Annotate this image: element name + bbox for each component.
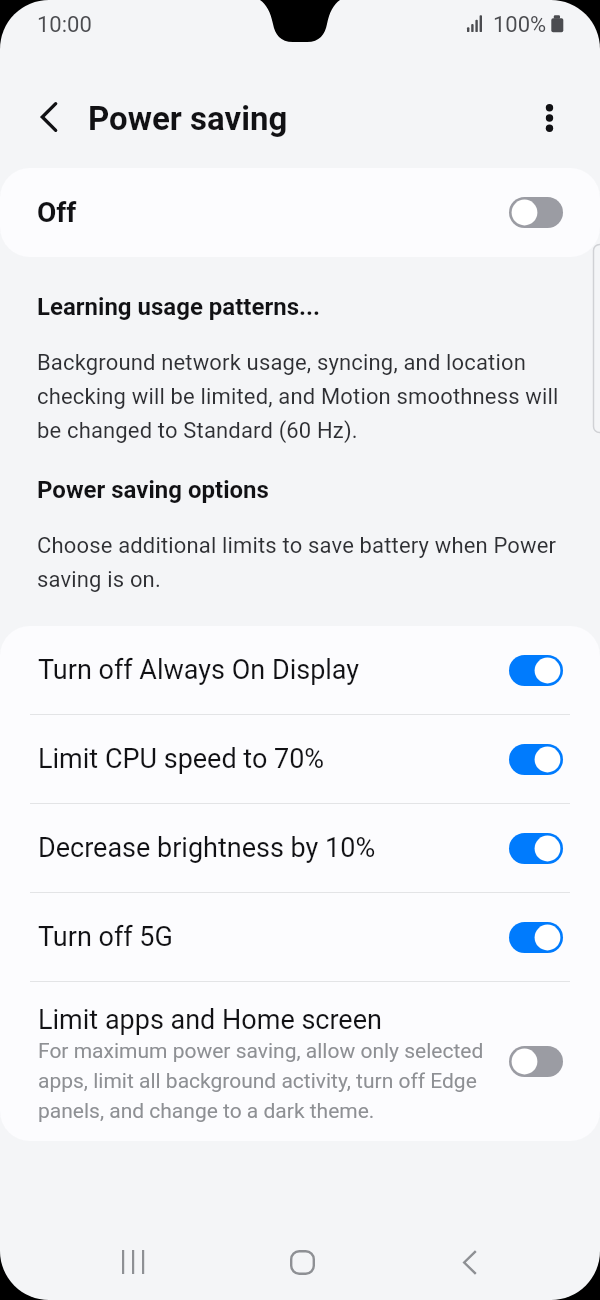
staticText: Learning usage patterns... [37,293,320,321]
button[interactable]: Off [0,168,600,257]
button[interactable]: More options [521,90,577,146]
staticText: Decrease brightness by 10% [38,832,509,864]
staticText: Limit CPU speed to 70% [38,743,509,775]
button[interactable]: Decrease brightness by 10% [0,804,600,892]
staticText: 10:00 [37,12,92,38]
button[interactable]: Turn off 5G [0,893,600,981]
staticText: Power saving [88,99,288,138]
button[interactable]: Navigate up [20,88,78,146]
button[interactable]: Back [432,1224,508,1300]
staticText: Choose additional limits to save battery… [37,526,565,594]
button[interactable]: Turn off Always On Display [0,626,600,714]
button[interactable]: Recent apps [95,1224,171,1300]
button[interactable]: Limit CPU speed to 70% [0,715,600,803]
staticText: Background network usage, syncing, and l… [37,343,565,445]
staticText: Off [37,196,77,229]
staticText: Turn off 5G [38,921,509,953]
button[interactable]: Limit apps and Home screen [0,982,600,1141]
staticText: For maximum power saving, allow only sel… [38,1034,490,1124]
staticText: Limit apps and Home screen [38,1004,382,1036]
button[interactable]: Home [264,1224,340,1300]
staticText: Power saving options [37,476,269,504]
staticText: 100% [493,12,547,38]
staticText: Turn off Always On Display [38,654,509,686]
